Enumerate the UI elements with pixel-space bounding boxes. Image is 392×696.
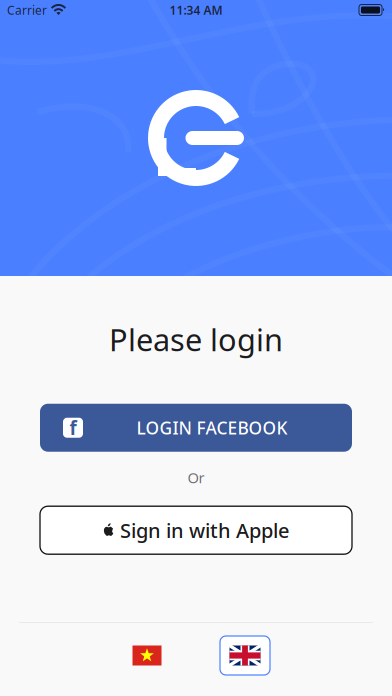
button[interactable]: f [40,404,352,452]
staticText: Please login [109,319,283,360]
button[interactable]: Vietnamese [122,636,172,675]
staticText: Or [187,468,204,487]
staticText: Sign in with Apple [120,517,289,543]
staticText: 11:34 AM [169,2,222,18]
staticText: f [69,415,76,440]
staticText: Carrier [7,2,47,18]
button[interactable]: English [220,636,270,675]
staticText: LOGIN FACEBOOK [136,416,287,439]
button[interactable]: Sign in with Apple [40,506,352,554]
